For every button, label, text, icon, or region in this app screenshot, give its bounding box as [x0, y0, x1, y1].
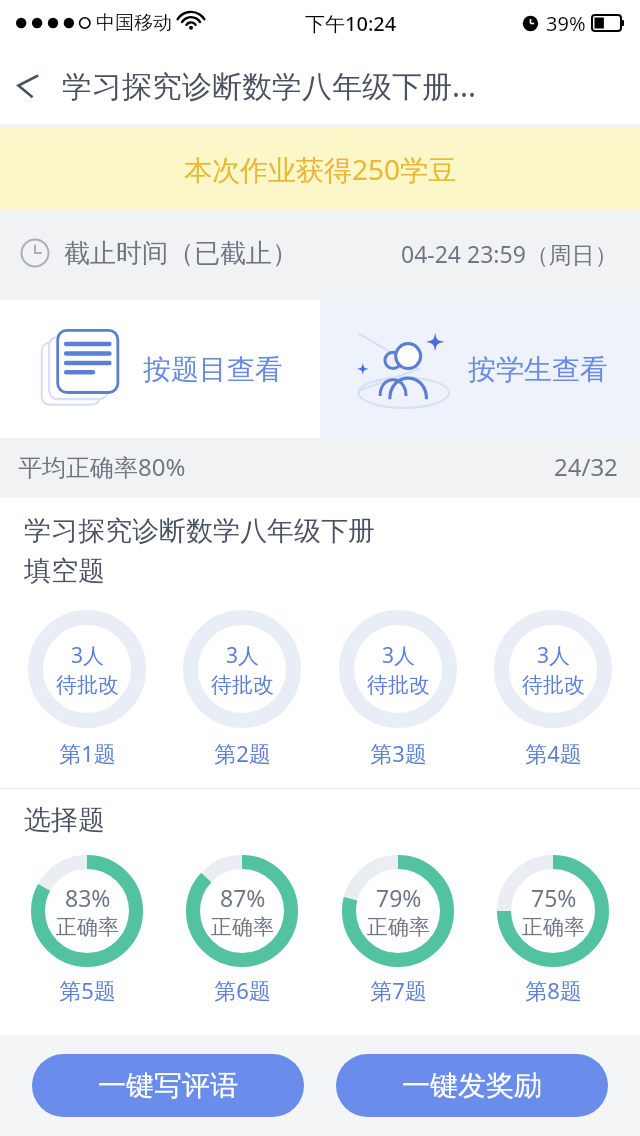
- button[interactable]: 83%: [12, 855, 162, 1005]
- staticText: 填空题: [24, 554, 105, 588]
- button[interactable]: 按学生查看: [320, 300, 640, 438]
- staticText: 学习探究诊断数学八年级下册: [24, 514, 375, 548]
- staticText: 正确率: [56, 914, 119, 940]
- button[interactable]: 3人: [478, 610, 628, 768]
- button[interactable]: 按题目查看: [0, 300, 320, 438]
- staticText: 3人: [382, 641, 416, 670]
- staticText: 一键发奖励: [402, 1068, 542, 1103]
- staticText: 中国移动: [96, 11, 172, 35]
- staticText: 39%: [546, 10, 586, 37]
- button[interactable]: 一键写评语: [32, 1054, 304, 1117]
- staticText: 正确率: [367, 914, 430, 940]
- staticText: 待批改: [522, 672, 585, 698]
- staticText: 截止时间（已截止）: [64, 237, 298, 270]
- button[interactable]: 75%: [478, 855, 628, 1005]
- staticText: 选择题: [24, 803, 105, 837]
- staticText: 83%: [65, 882, 111, 913]
- staticText: 第5题: [59, 975, 116, 1005]
- staticText: 本次作业获得250学豆: [184, 150, 457, 188]
- button[interactable]: Back: [0, 57, 56, 113]
- button[interactable]: 3人: [323, 610, 473, 768]
- staticText: 75%: [531, 882, 577, 913]
- button[interactable]: 3人: [167, 610, 317, 768]
- staticText: 第6题: [214, 975, 271, 1005]
- staticText: 平均正确率80%: [18, 450, 186, 483]
- staticText: 24/32: [554, 450, 618, 483]
- staticText: 待批改: [211, 672, 274, 698]
- button[interactable]: 87%: [167, 855, 317, 1005]
- staticText: 按题目查看: [143, 352, 283, 387]
- staticText: 正确率: [522, 914, 585, 940]
- staticText: 正确率: [211, 914, 274, 940]
- staticText: 第1题: [59, 738, 116, 768]
- staticText: 第8题: [525, 975, 582, 1005]
- staticText: 79%: [376, 882, 422, 913]
- staticText: 第2题: [214, 738, 271, 768]
- staticText: 一键写评语: [98, 1068, 238, 1103]
- button[interactable]: 一键发奖励: [336, 1054, 608, 1117]
- staticText: 下午10:24: [305, 10, 397, 37]
- button[interactable]: 79%: [323, 855, 473, 1005]
- staticText: 第7题: [370, 975, 427, 1005]
- staticText: 3人: [71, 641, 105, 670]
- staticText: 3人: [226, 641, 260, 670]
- staticText: 按学生查看: [468, 352, 608, 387]
- staticText: 待批改: [56, 672, 119, 698]
- staticText: 04-24 23:59（周日）: [401, 238, 618, 269]
- button[interactable]: 3人: [12, 610, 162, 768]
- staticText: 第4题: [525, 738, 582, 768]
- staticText: 87%: [220, 882, 266, 913]
- staticText: 第3题: [370, 738, 427, 768]
- staticText: 待批改: [367, 672, 430, 698]
- staticText: 学习探究诊断数学八年级下册...: [62, 65, 477, 106]
- staticText: 3人: [537, 641, 571, 670]
